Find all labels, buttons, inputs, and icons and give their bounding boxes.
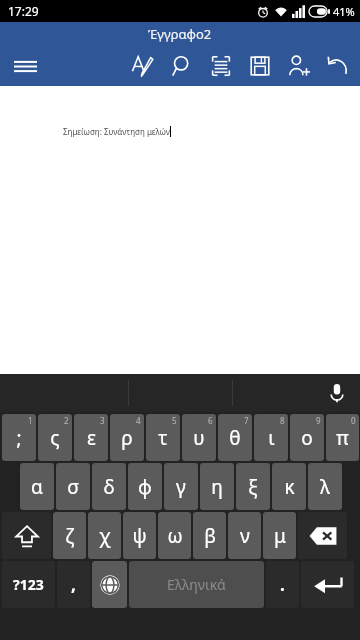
staticText: ε xyxy=(87,425,96,451)
button[interactable]: Ink xyxy=(123,45,162,86)
button[interactable]: Ελληνικά xyxy=(129,561,264,608)
staticText: 5 xyxy=(172,415,177,426)
button[interactable]: Reading view xyxy=(201,45,240,86)
staticText: υ xyxy=(193,425,205,451)
button[interactable]: ρ xyxy=(110,414,144,461)
staticText: ψ xyxy=(132,523,147,549)
staticText: ξ xyxy=(248,474,258,500)
button[interactable]: ; xyxy=(2,414,36,461)
staticText: 1 xyxy=(28,415,33,426)
staticText: γ xyxy=(176,474,186,500)
staticText: ρ xyxy=(121,425,133,451)
button[interactable]: η xyxy=(200,463,234,510)
staticText: α xyxy=(31,474,43,500)
staticText: ?123 xyxy=(13,575,44,594)
button[interactable]: π xyxy=(326,414,359,461)
staticText: ο xyxy=(301,425,313,451)
button[interactable]: β xyxy=(193,512,226,559)
button[interactable]: Search xyxy=(162,45,201,86)
staticText: 3 xyxy=(100,415,105,426)
button[interactable]: υ xyxy=(182,414,216,461)
staticText: ; xyxy=(16,425,22,451)
button[interactable]: χ xyxy=(88,512,121,559)
button[interactable]: Backspace xyxy=(298,512,347,559)
staticText: 6 xyxy=(208,415,213,426)
staticText: ν xyxy=(240,523,250,549)
button[interactable]: θ xyxy=(218,414,252,461)
staticText: π xyxy=(336,425,349,451)
button[interactable]: ω xyxy=(158,512,191,559)
staticText: τ xyxy=(158,425,168,451)
button[interactable]: Undo xyxy=(318,45,357,86)
button[interactable]: δ xyxy=(92,463,126,510)
staticText: . xyxy=(280,573,285,596)
button[interactable]: Voice input xyxy=(322,378,352,408)
button[interactable]: Έγγραφο2 xyxy=(0,22,360,45)
button[interactable]: κ xyxy=(272,463,306,510)
staticText: κ xyxy=(284,474,295,500)
button[interactable]: ξ xyxy=(236,463,270,510)
button[interactable]: . xyxy=(266,561,299,608)
staticText: δ xyxy=(103,474,115,500)
staticText: η xyxy=(211,474,223,500)
staticText: μ xyxy=(274,523,286,549)
button[interactable]: Save xyxy=(240,45,279,86)
button[interactable]: Σημείωση: Συνάντηση μελών xyxy=(0,86,360,374)
staticText: σ xyxy=(67,474,79,500)
button[interactable]: ς xyxy=(38,414,72,461)
button[interactable]: μ xyxy=(263,512,296,559)
staticText: χ xyxy=(99,523,111,549)
staticText: Σημείωση: Συνάντηση μελών xyxy=(63,126,170,137)
button[interactable]: Shift xyxy=(2,512,51,559)
staticText: φ xyxy=(138,474,152,500)
button[interactable]: Share xyxy=(279,45,318,86)
staticText: 17:29 xyxy=(8,3,39,19)
button[interactable]: Menu xyxy=(7,48,43,84)
staticText: ι xyxy=(268,425,275,451)
button[interactable]: Enter xyxy=(301,561,354,608)
button[interactable]: λ xyxy=(308,463,342,510)
staticText: λ xyxy=(320,474,330,500)
staticText: Ελληνικά xyxy=(167,575,226,594)
staticText: ω xyxy=(167,523,183,549)
button[interactable]: ν xyxy=(228,512,261,559)
staticText: ζ xyxy=(65,523,74,549)
button[interactable]: , xyxy=(57,561,90,608)
button[interactable]: ε xyxy=(74,414,108,461)
staticText: 4 xyxy=(136,415,141,426)
button[interactable]: ι xyxy=(254,414,288,461)
staticText: θ xyxy=(229,425,241,451)
staticText: 7 xyxy=(244,415,249,426)
button[interactable]: ζ xyxy=(53,512,86,559)
staticText: 8 xyxy=(280,415,285,426)
staticText: 41% xyxy=(333,4,355,19)
button[interactable]: σ xyxy=(56,463,90,510)
button[interactable]: τ xyxy=(146,414,180,461)
button[interactable]: ?123 xyxy=(2,561,55,608)
button[interactable]: α xyxy=(20,463,54,510)
button[interactable]: ο xyxy=(290,414,324,461)
button[interactable]: γ xyxy=(164,463,198,510)
button[interactable]: ψ xyxy=(123,512,156,559)
button[interactable]: φ xyxy=(128,463,162,510)
staticText: β xyxy=(204,523,216,549)
staticText: 2 xyxy=(64,415,69,426)
staticText: ς xyxy=(50,425,60,451)
button[interactable]: Change language xyxy=(92,561,127,608)
staticText: Έγγραφο2 xyxy=(148,25,212,43)
staticText: , xyxy=(71,573,76,596)
staticText: 9 xyxy=(316,415,321,426)
staticText: 0 xyxy=(351,415,356,426)
